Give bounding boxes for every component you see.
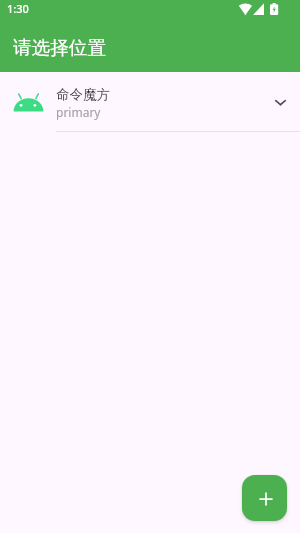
button[interactable]: Expand [258,80,300,124]
button[interactable]: Add [242,475,287,521]
staticText: primary [56,104,101,120]
staticText: 请选择位置 [13,36,106,59]
staticText: 1:30 [7,1,29,16]
button[interactable]: 命令魔方 [0,72,300,132]
staticText: 命令魔方 [56,86,110,103]
